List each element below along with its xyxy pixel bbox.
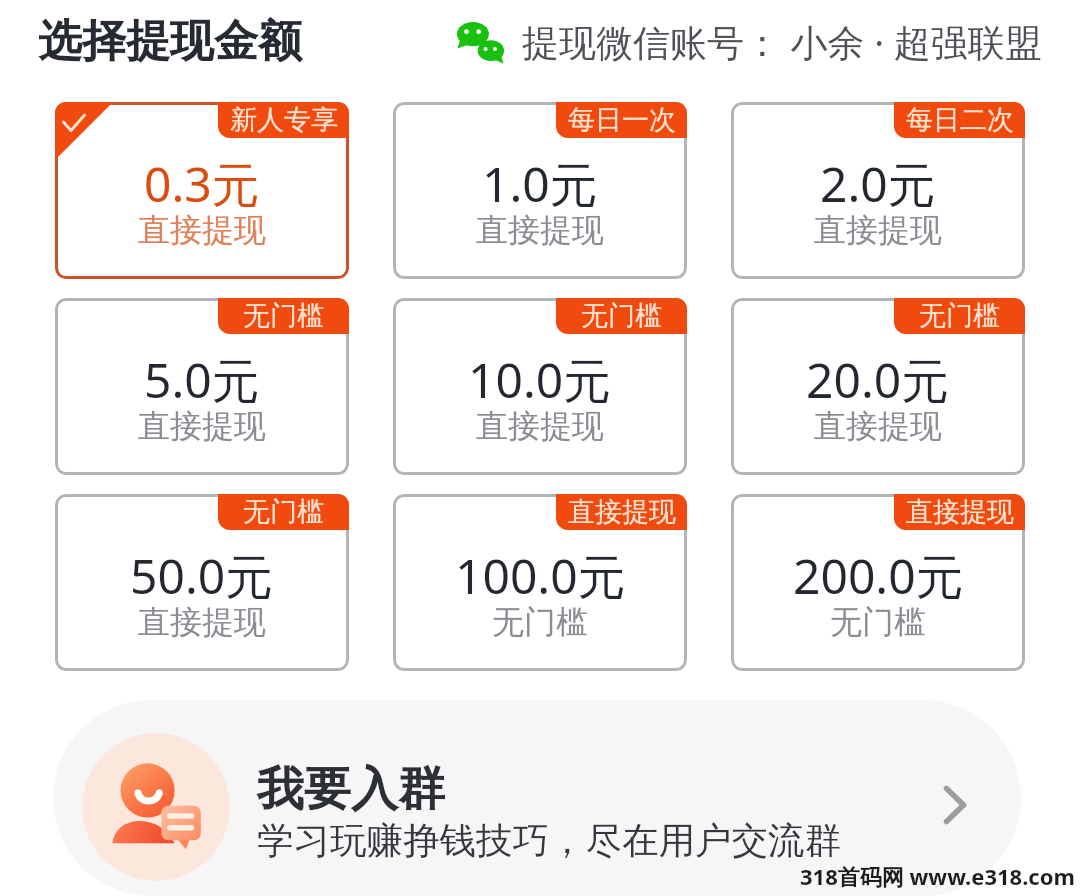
staticText: 每日一次 — [568, 103, 676, 137]
button[interactable]: 0.3元 — [55, 102, 349, 279]
staticText: 新人专享 — [230, 103, 338, 137]
button[interactable]: 5.0元 — [55, 298, 349, 475]
button[interactable]: 50.0元 — [55, 494, 349, 671]
staticText: 学习玩赚挣钱技巧，尽在用户交流群 — [257, 818, 841, 864]
staticText: 无门槛 — [581, 299, 662, 333]
staticText: 直接提现 — [568, 495, 676, 529]
staticText: 5.0元 — [144, 347, 260, 413]
staticText: 直接提现 — [476, 406, 604, 446]
staticText: 选择提现金额 — [38, 14, 302, 69]
button[interactable]: 10.0元 — [393, 298, 687, 475]
button[interactable]: 100.0元 — [393, 494, 687, 671]
staticText: 每日二次 — [906, 103, 1014, 137]
staticText: 2.0元 — [820, 151, 936, 217]
staticText: 20.0元 — [806, 347, 950, 413]
staticText: 直接提现 — [814, 210, 942, 250]
button[interactable]: 20.0元 — [731, 298, 1025, 475]
staticText: 提现微信账号： 小余 · 超强联盟 — [522, 16, 1042, 67]
staticText: 直接提现 — [814, 406, 942, 446]
other: 进入用户交流群 — [919, 769, 991, 841]
staticText: 直接提现 — [906, 495, 1014, 529]
button[interactable]: 200.0元 — [731, 494, 1025, 671]
staticText: 直接提现 — [138, 210, 266, 250]
button[interactable]: 我要入群 — [53, 700, 1021, 896]
staticText: 直接提现 — [476, 210, 604, 250]
staticText: 0.3元 — [144, 151, 260, 217]
staticText: 无门槛 — [243, 299, 324, 333]
staticText: 318首码网 www.e318.com — [800, 861, 1075, 891]
staticText: 无门槛 — [243, 495, 324, 529]
staticText: 我要入群 — [257, 760, 445, 819]
other: 微信 — [457, 22, 504, 61]
staticText: 无门槛 — [919, 299, 1000, 333]
staticText: 100.0元 — [455, 543, 626, 609]
staticText: 无门槛 — [492, 602, 588, 642]
button[interactable]: 2.0元 — [731, 102, 1025, 279]
staticText: 无门槛 — [830, 602, 926, 642]
staticText: 10.0元 — [468, 347, 612, 413]
staticText: 200.0元 — [793, 543, 964, 609]
staticText: 直接提现 — [138, 406, 266, 446]
staticText: 50.0元 — [130, 543, 274, 609]
staticText: 直接提现 — [138, 602, 266, 642]
button[interactable]: 1.0元 — [393, 102, 687, 279]
staticText: 1.0元 — [482, 151, 598, 217]
